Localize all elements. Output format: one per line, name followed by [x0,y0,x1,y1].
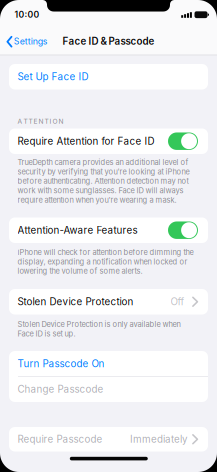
button[interactable]: Change Passcode [9,376,208,402]
staticText: lowering the volume of some alerts. [17,266,142,276]
staticText: Immediately [130,433,188,445]
button[interactable]: Require Passcode [9,427,208,451]
staticText: security by verifying that you're lookin… [17,167,189,176]
staticText: Turn Passcode On [17,358,104,370]
staticText: iPhone will check for attention before d… [17,248,193,257]
staticText: Off [170,296,184,308]
button[interactable]: Settings [6,33,64,49]
button[interactable]: Stolen Device Protection [9,289,208,314]
staticText: Change Passcode [17,383,103,395]
staticText: require attention when you're wearing a … [17,195,176,204]
staticText: TrueDepth camera provides an additional … [17,158,188,167]
staticText: Face ID is set up. [17,329,75,338]
button[interactable]: Require Attention for Face ID [168,132,198,150]
staticText: Settings [14,36,48,47]
button[interactable]: Turn Passcode On [9,351,208,376]
button[interactable]: Attention-Aware Features [168,221,198,239]
staticText: A T T E N T I O N [17,117,63,125]
staticText: Stolen Device Protection is only availab… [17,320,180,329]
staticText: Require Passcode [17,433,102,445]
staticText: Attention-Aware Features [17,224,137,236]
staticText: work with some sunglasses. Face ID will … [17,186,183,195]
staticText: before authenticating. Attention detecti… [17,176,188,186]
button[interactable]: Set Up Face ID [9,64,208,89]
staticText: Require Attention for Face ID [17,135,154,147]
staticText: display, expanding a notification when l… [17,257,187,266]
staticText: Set Up Face ID [17,71,88,83]
staticText: Face ID & Passcode [62,35,154,47]
staticText: 10:00 [14,9,39,20]
staticText: Stolen Device Protection [17,296,133,308]
